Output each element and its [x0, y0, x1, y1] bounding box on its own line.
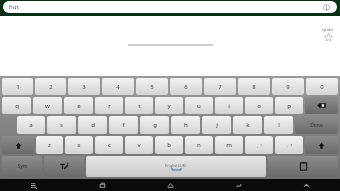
staticText: i	[228, 102, 230, 110]
staticText: 6	[184, 83, 188, 91]
button[interactable]: Expand	[272, 179, 340, 191]
button[interactable]: 7	[204, 78, 236, 95]
staticText: 7	[218, 83, 222, 91]
button[interactable]: Clipboard	[268, 156, 338, 177]
button[interactable]: b	[155, 136, 183, 154]
button[interactable]: e	[64, 97, 93, 114]
button[interactable]: 4	[102, 78, 134, 95]
staticText: s	[60, 121, 63, 129]
button[interactable]: spoke	[322, 27, 334, 42]
staticText: 0	[320, 83, 324, 91]
button[interactable]: m	[215, 136, 243, 154]
button[interactable]: s	[47, 116, 76, 134]
button[interactable]: Backspace	[305, 97, 338, 114]
staticText: hut	[9, 3, 19, 11]
staticText: 5	[150, 83, 154, 91]
button[interactable]: y	[155, 97, 183, 114]
button[interactable]: f	[109, 116, 138, 134]
staticText: g	[153, 121, 157, 129]
button[interactable]: j	[202, 116, 231, 134]
button[interactable]: i	[215, 97, 243, 114]
button[interactable]: d	[78, 116, 107, 134]
staticText: q	[15, 102, 19, 110]
button[interactable]: n	[185, 136, 213, 154]
button[interactable]: z	[36, 136, 63, 154]
button[interactable]: 5	[136, 78, 168, 95]
button[interactable]: English(UK)	[86, 156, 266, 177]
button[interactable]: p	[275, 97, 303, 114]
button[interactable]: c	[95, 136, 123, 154]
staticText: z	[48, 141, 51, 149]
staticText: e	[77, 102, 81, 110]
staticText: w	[45, 102, 50, 110]
button[interactable]: 9	[272, 78, 304, 95]
button[interactable]: Back	[204, 179, 272, 191]
button[interactable]: 2	[35, 78, 66, 95]
staticText: m	[226, 141, 232, 149]
staticText: f	[122, 121, 125, 129]
button[interactable]: 1	[2, 78, 33, 95]
button[interactable]: Home	[136, 179, 204, 191]
staticText: v	[137, 141, 141, 149]
button[interactable]: . ?	[275, 136, 303, 154]
button[interactable]: 3	[68, 78, 100, 95]
staticText: l	[278, 121, 280, 129]
button[interactable]: l	[264, 116, 293, 134]
staticText: . ?	[287, 143, 292, 148]
staticText: 9	[286, 83, 290, 91]
staticText: Sym	[17, 163, 28, 170]
staticText: b	[167, 141, 171, 149]
staticText: English(UK)	[165, 163, 187, 168]
staticText: t	[138, 102, 141, 110]
staticText: n	[197, 141, 201, 149]
staticText: 2	[49, 83, 53, 91]
staticText: a	[29, 121, 33, 129]
other: Favorite	[324, 33, 333, 42]
staticText: 4	[116, 83, 120, 91]
staticText: p	[287, 102, 291, 110]
button[interactable]: v	[125, 136, 153, 154]
button[interactable]: 6	[170, 78, 202, 95]
button[interactable]: q	[2, 97, 31, 114]
staticText: x	[77, 141, 81, 149]
button[interactable]: Input method	[44, 156, 84, 177]
button[interactable]: Shift	[305, 136, 338, 154]
button[interactable]: o	[245, 97, 273, 114]
button[interactable]: r	[95, 97, 123, 114]
button[interactable]: hut	[3, 1, 337, 13]
button[interactable]: Recents	[68, 179, 136, 191]
staticText: , !	[257, 143, 262, 148]
button[interactable]: 0	[306, 78, 338, 95]
staticText: u	[197, 102, 201, 110]
staticText: 1	[16, 83, 20, 91]
staticText: o	[257, 102, 261, 110]
button[interactable]: a	[17, 116, 45, 134]
button[interactable]: Voice search	[321, 1, 331, 13]
button[interactable]: 8	[238, 78, 270, 95]
button[interactable]: , !	[245, 136, 273, 154]
button[interactable]: g	[140, 116, 169, 134]
staticText: 3	[82, 83, 86, 91]
button[interactable]: h	[171, 116, 200, 134]
staticText: Done	[310, 122, 323, 129]
staticText: j	[216, 121, 218, 129]
staticText: 8	[252, 83, 256, 91]
button[interactable]: Shift	[2, 136, 34, 154]
staticText: y	[167, 102, 171, 110]
button[interactable]: u	[185, 97, 213, 114]
button[interactable]: Done	[295, 116, 338, 134]
staticText: r	[108, 102, 111, 110]
button[interactable]: Menu	[0, 179, 68, 191]
staticText: h	[184, 121, 188, 129]
button[interactable]: Sym	[2, 156, 42, 177]
button[interactable]: x	[65, 136, 93, 154]
button[interactable]: k	[233, 116, 262, 134]
button[interactable]: w	[33, 97, 62, 114]
staticText: c	[108, 141, 111, 149]
staticText: d	[91, 121, 95, 129]
staticText: spoke	[322, 27, 334, 32]
staticText: k	[246, 121, 250, 129]
button[interactable]: t	[125, 97, 153, 114]
